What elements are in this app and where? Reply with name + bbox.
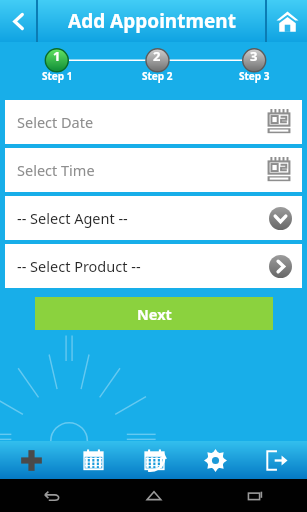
staticText: Select Time [17, 160, 266, 180]
button[interactable]: Log out [246, 441, 307, 479]
button[interactable]: Add appointment [0, 441, 62, 479]
button[interactable]: Back [0, 0, 36, 42]
staticText: Add Appointment [68, 8, 236, 34]
button[interactable]: Recent apps [205, 479, 307, 512]
button[interactable]: -- Select Product -- [5, 244, 302, 288]
staticText: -- Select Agent -- [17, 208, 269, 228]
staticText: 2 [153, 47, 161, 65]
button[interactable]: Next [35, 297, 273, 330]
button[interactable]: Calendar [62, 441, 124, 479]
staticText: -- Select Product -- [17, 256, 269, 276]
staticText: Select Date [17, 112, 266, 132]
button[interactable]: Home [103, 479, 205, 512]
button[interactable]: Settings [185, 441, 246, 479]
staticText: 1 [53, 47, 61, 65]
staticText: 3 [250, 47, 258, 65]
button[interactable]: Select Time [5, 148, 302, 192]
button[interactable]: Select Date [5, 100, 302, 144]
staticText: Next [137, 304, 172, 324]
button[interactable]: -- Select Agent -- [5, 196, 302, 240]
staticText: Step 2 [142, 69, 173, 83]
button[interactable]: Back [0, 479, 103, 512]
staticText: Step 1 [42, 69, 73, 83]
staticText: Step 3 [239, 69, 270, 83]
button[interactable]: Home [267, 0, 307, 42]
button[interactable]: Appointments [124, 441, 185, 479]
